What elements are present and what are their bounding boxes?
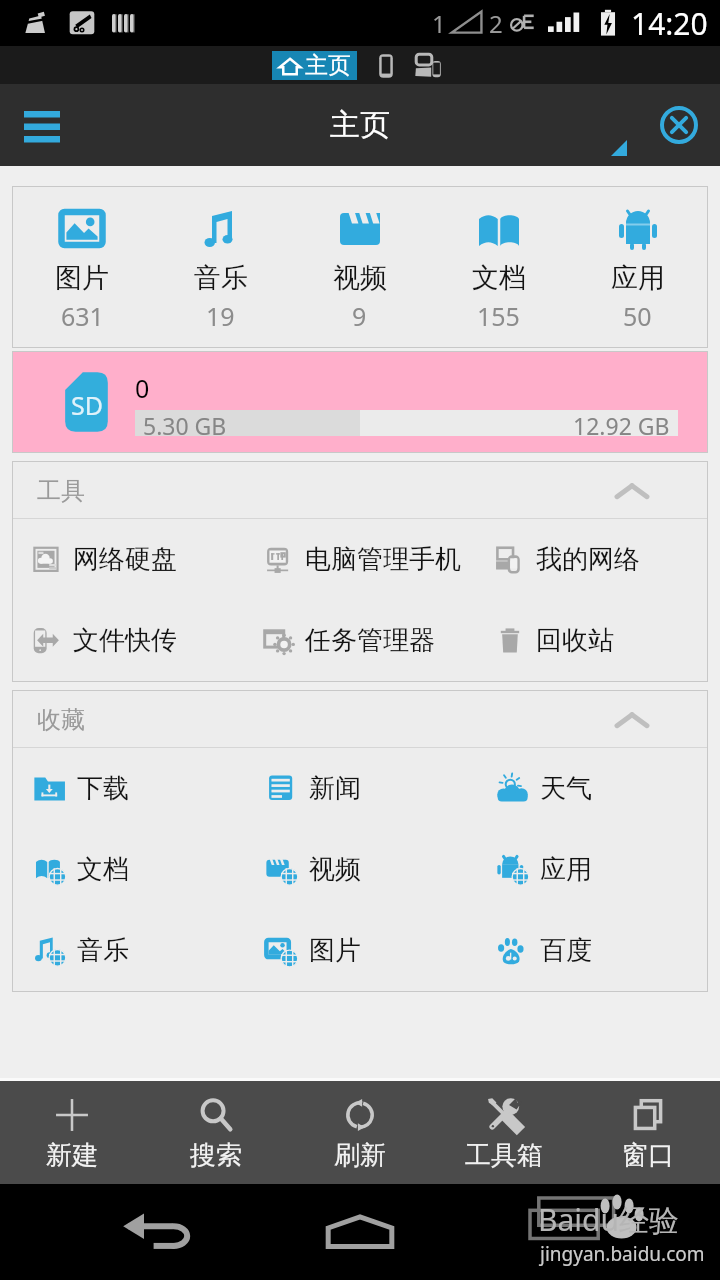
button[interactable]: 电脑管理手机 [245,519,476,600]
staticText: 0 [135,371,150,405]
staticText: SD [71,388,103,422]
staticText: 下载 [77,772,129,805]
button[interactable]: 窗口 [576,1081,720,1184]
staticText: 电脑管理手机 [305,543,461,576]
staticText: 1 [432,7,446,40]
button[interactable]: Back [120,1203,200,1261]
button[interactable]: 刷新 [288,1081,432,1184]
button[interactable]: 下载 [13,748,245,829]
staticText: 天气 [540,772,592,805]
button[interactable]: 网络硬盘 [13,519,245,600]
button[interactable]: 文档 [13,829,245,910]
staticText: 音乐 [77,934,129,967]
staticText: 百度 [540,934,592,967]
staticText: 应用 [540,853,592,886]
staticText: 回收站 [536,624,614,657]
button[interactable]: 主页 [272,51,357,80]
button[interactable]: 搜索 [144,1081,288,1184]
staticText: 视频 [333,261,387,295]
staticText: 新闻 [309,772,361,805]
staticText: 刷新 [334,1139,386,1172]
staticText: 工具 [37,476,85,506]
button[interactable]: Home [323,1212,397,1252]
staticText: 新建 [46,1139,98,1172]
staticText: 应用 [611,261,665,295]
button[interactable]: 图片 [13,187,151,347]
staticText: 窗口 [622,1139,674,1172]
staticText: 155 [477,299,520,333]
button[interactable]: 文件快传 [13,600,245,681]
staticText: 任务管理器 [305,624,435,657]
staticText: 视频 [309,853,361,886]
staticText: 主页 [305,51,351,80]
staticText: 12.92 GB [573,410,670,436]
button[interactable]: Phone [375,52,397,80]
staticText: 文档 [472,261,526,295]
staticText: 19 [206,299,235,333]
button[interactable]: 任务管理器 [245,600,476,681]
staticText: jingyan.baidu.com [540,1241,705,1267]
button[interactable]: 音乐 [13,910,245,991]
staticText: 2 [489,7,503,40]
button[interactable]: 新建 [0,1081,144,1184]
staticText: 5.30 GB [143,410,227,436]
button[interactable]: 文档 [429,187,568,347]
staticText: 音乐 [194,261,248,295]
staticText: 9 [352,299,367,333]
button[interactable]: 我的网络 [476,519,707,600]
staticText: 工具箱 [465,1139,543,1172]
staticText: 网络硬盘 [73,543,177,576]
button[interactable]: 百度 [476,910,707,991]
staticText: 631 [61,299,104,333]
button[interactable]: SD [13,352,707,452]
staticText: 收藏 [37,705,85,735]
staticText: 主页 [330,106,390,144]
button[interactable]: Menu [14,97,70,153]
staticText: 文件快传 [73,624,177,657]
button[interactable]: 视频 [290,187,429,347]
button[interactable]: 应用 [476,829,707,910]
staticText: 图片 [309,934,361,967]
button[interactable]: 新闻 [245,748,476,829]
button[interactable]: 视频 [245,829,476,910]
staticText: 搜索 [190,1139,242,1172]
button[interactable]: 音乐 [151,187,290,347]
staticText: Baidu经验 [538,1199,680,1240]
button[interactable]: 应用 [568,187,707,347]
button[interactable]: 工具箱 [432,1081,576,1184]
button[interactable]: Close [656,102,702,148]
staticText: 图片 [55,261,109,295]
staticText: 50 [623,299,652,333]
staticText: 我的网络 [536,543,640,576]
staticText: 14:20 [631,3,708,44]
staticText: 文档 [77,853,129,886]
button[interactable]: 图片 [245,910,476,991]
button[interactable]: 天气 [476,748,707,829]
button[interactable]: Remote devices [415,52,445,80]
button[interactable]: 回收站 [476,600,707,681]
